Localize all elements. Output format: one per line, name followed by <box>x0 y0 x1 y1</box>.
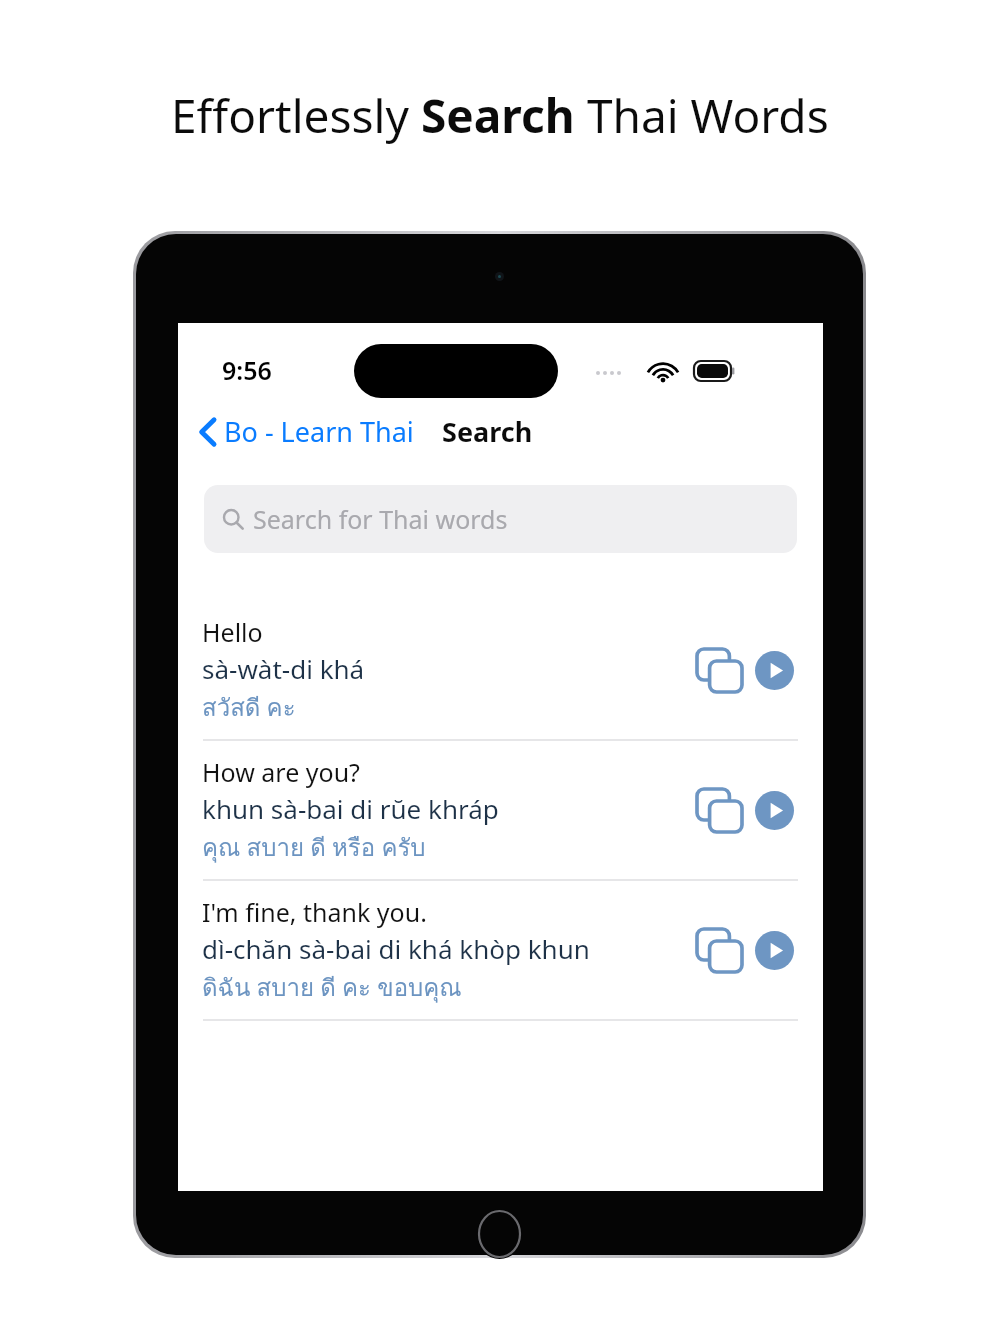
staticText: How are you? <box>202 755 360 789</box>
button[interactable]: Copy <box>693 784 745 836</box>
button[interactable]: Search for Thai words <box>204 485 797 553</box>
staticText: Hello <box>202 615 263 649</box>
button[interactable]: Play <box>751 787 797 833</box>
staticText: Search <box>442 413 533 450</box>
staticText: dì-chăn sà-bai di khá khòp khun <box>202 931 590 966</box>
staticText: Search <box>421 84 575 147</box>
staticText: khun sà-bai di rŭe khráp <box>202 791 499 826</box>
staticText: Search for Thai words <box>253 502 508 536</box>
button[interactable]: Copy <box>693 644 745 696</box>
button[interactable]: Home <box>477 1209 522 1259</box>
staticText: 9:56 <box>222 353 272 387</box>
staticText: I'm fine, thank you. <box>202 895 427 929</box>
button[interactable]: Play <box>751 647 797 693</box>
button[interactable]: I'm fine, thank you. <box>178 881 823 1019</box>
staticText: sà-wàt-di khá <box>202 651 365 686</box>
staticText: ดิฉัน สบาย ดี คะ ขอบคุณ <box>202 968 462 1006</box>
staticText: สวัสดี คะ <box>202 688 296 726</box>
button[interactable]: Bo - Learn Thai <box>196 407 418 456</box>
button[interactable]: Copy <box>693 924 745 976</box>
staticText: Bo - Learn Thai <box>224 413 414 450</box>
button[interactable]: How are you? <box>178 741 823 879</box>
staticText: Thai Words <box>575 84 829 147</box>
button[interactable]: Play <box>751 927 797 973</box>
staticText: คุณ สบาย ดี หรือ ครับ <box>202 828 426 866</box>
staticText: Effortlessly <box>171 84 421 147</box>
button[interactable]: Hello <box>178 601 823 739</box>
